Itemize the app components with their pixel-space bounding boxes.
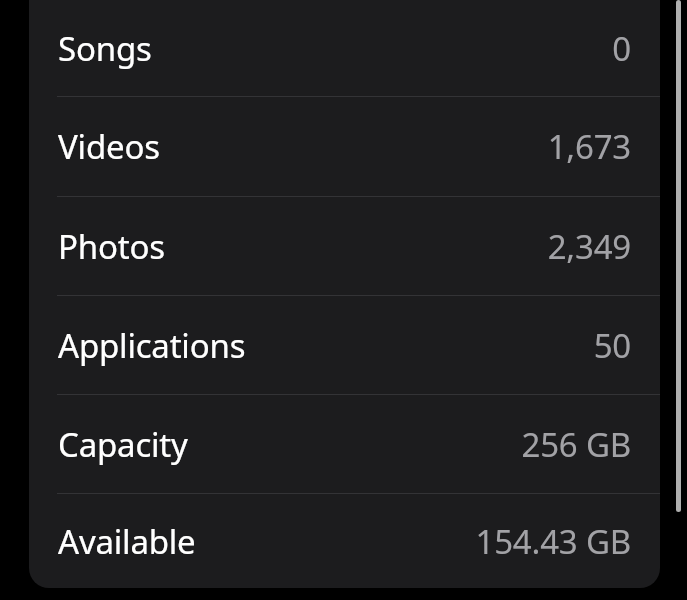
staticText: 256 GB <box>521 422 631 467</box>
staticText: 1,673 <box>547 124 631 169</box>
button[interactable]: Videos <box>29 97 660 196</box>
staticText: Videos <box>58 124 160 169</box>
staticText: Songs <box>58 26 152 71</box>
button[interactable]: Available <box>29 494 660 588</box>
staticText: 50 <box>593 323 631 368</box>
staticText: Available <box>58 519 196 564</box>
staticText: 154.43 GB <box>475 519 631 564</box>
staticText: 0 <box>612 26 631 71</box>
button[interactable]: Applications <box>29 296 660 394</box>
staticText: Photos <box>58 224 165 269</box>
staticText: 2,349 <box>547 224 631 269</box>
staticText: Capacity <box>58 422 188 467</box>
button[interactable]: Photos <box>29 197 660 295</box>
button[interactable]: Songs <box>29 0 660 96</box>
staticText: Applications <box>58 323 246 368</box>
button[interactable]: Capacity <box>29 395 660 493</box>
